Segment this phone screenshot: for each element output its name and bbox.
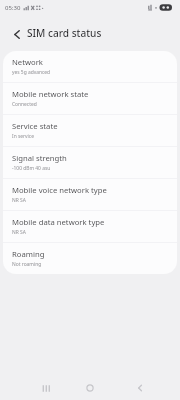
staticText: Network [12,57,43,67]
button[interactable]: Navigate up [6,24,27,45]
button[interactable]: Home [74,377,106,399]
button[interactable]: Signal strength [3,147,177,178]
staticText: Signal strength [12,153,67,163]
staticText: Roaming [12,249,45,259]
staticText: -100 dBm 40 asu [12,165,51,172]
staticText: Mobile data network type [12,217,105,227]
staticText: Service state [12,121,58,131]
button[interactable]: Mobile voice network type [3,179,177,210]
button[interactable]: Network [3,51,177,82]
button[interactable]: Recent apps [30,377,62,399]
button[interactable]: Roaming [3,243,177,274]
button[interactable]: Service state [3,115,177,146]
button[interactable]: Mobile network state [3,83,177,114]
staticText: 05:30 [5,4,21,12]
staticText: Mobile voice network type [12,185,107,195]
staticText: yes 5g advanced [12,69,51,76]
button[interactable]: Mobile data network type [3,211,177,242]
staticText: NR SA [12,197,26,204]
staticText: Mobile network state [12,89,89,99]
staticText: In service [12,133,34,140]
staticText: Connected [12,101,37,108]
button[interactable]: Back [124,377,156,399]
staticText: NR SA [12,229,26,236]
staticText: Not roaming [12,261,42,268]
staticText: SIM card status [27,26,102,40]
